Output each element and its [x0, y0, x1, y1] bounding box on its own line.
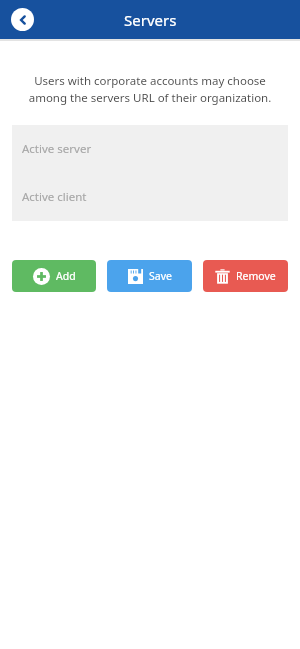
staticText: Active server [22, 141, 92, 157]
staticText: Active client [22, 189, 87, 205]
staticText: Servers [124, 10, 177, 30]
button[interactable]: Save [107, 260, 192, 292]
button[interactable]: Add [12, 260, 96, 292]
staticText: Remove [236, 269, 276, 283]
staticText: Users with corporate accounts may choose… [16, 73, 284, 106]
staticText: Save [149, 269, 172, 283]
button[interactable]: Remove [203, 260, 288, 292]
button[interactable]: Back [11, 8, 34, 31]
staticText: Add [56, 269, 76, 283]
button[interactable]: Active client [12, 173, 288, 221]
button[interactable]: Active server [12, 125, 288, 173]
